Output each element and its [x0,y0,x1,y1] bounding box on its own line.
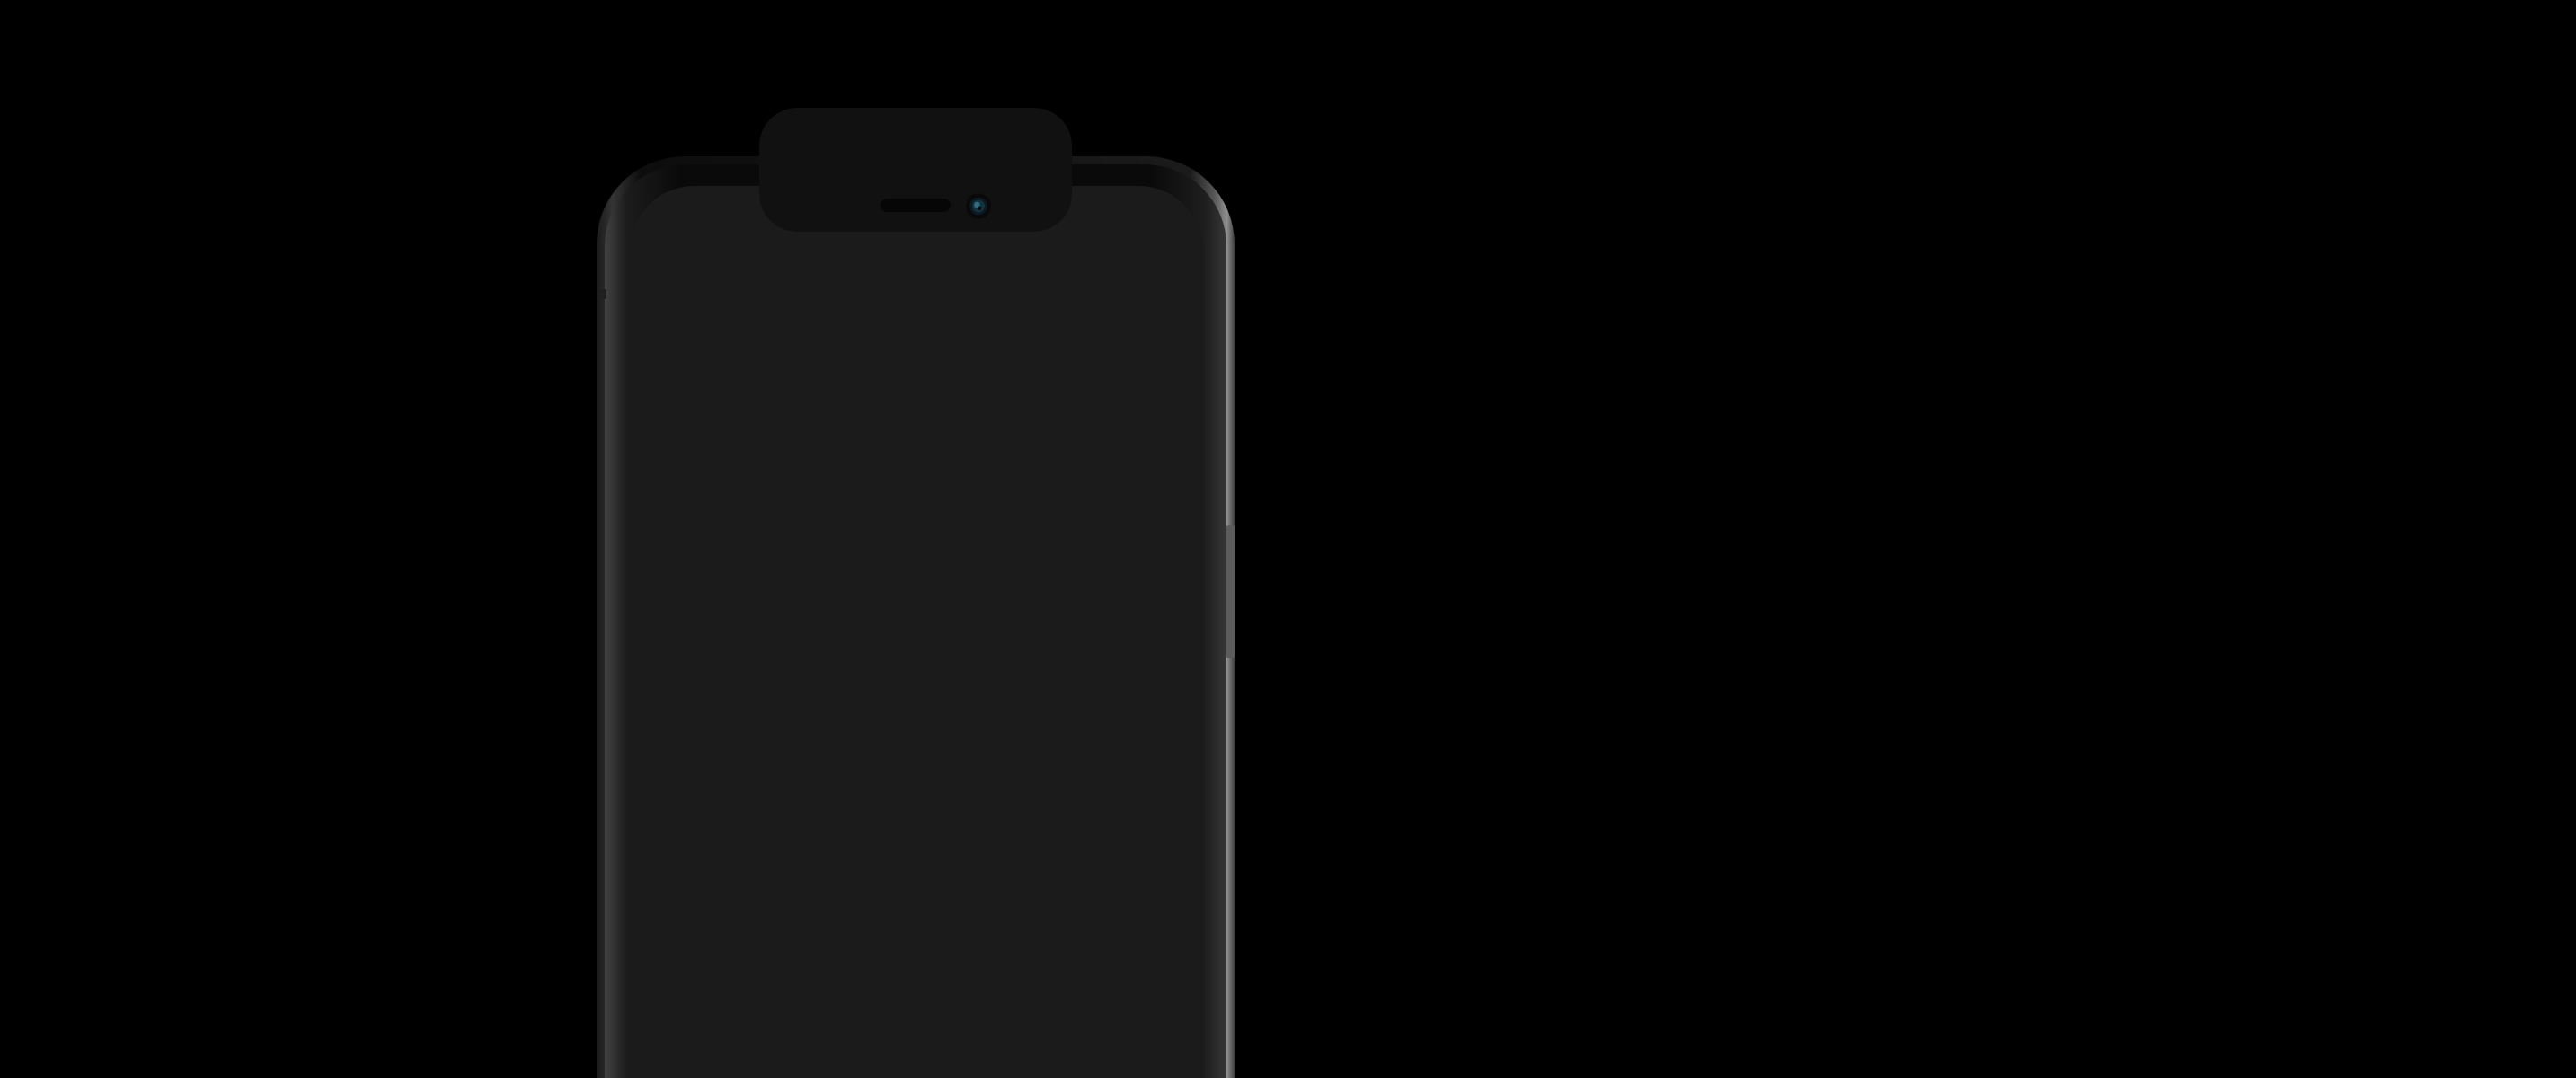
button[interactable]: Phone device mockup, screen off [0,0,2576,1078]
